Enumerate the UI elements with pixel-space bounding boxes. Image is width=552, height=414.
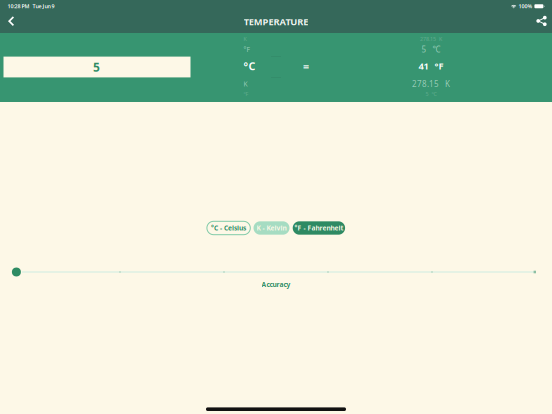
button[interactable]: Share: [532, 13, 548, 33]
staticText: 100%: [519, 3, 533, 10]
staticText: K - Kelvin: [256, 224, 286, 232]
staticText: °C: [243, 59, 255, 73]
staticText: K: [243, 80, 247, 88]
staticText: °F: [243, 90, 248, 98]
button[interactable]: K - Kelvin: [253, 221, 289, 235]
staticText: Accuracy: [261, 280, 290, 289]
staticText: =: [303, 59, 309, 73]
staticText: 278.15 K: [420, 35, 442, 43]
button[interactable]: Accuracy: [5, 261, 27, 283]
staticText: 41 °F: [418, 60, 443, 72]
button[interactable]: °F - Fahrenheit: [293, 221, 345, 235]
staticText: °F: [243, 45, 249, 54]
staticText: 278.15 K: [412, 79, 450, 89]
staticText: 5 °C: [425, 90, 436, 98]
button[interactable]: °C - Celsius: [207, 221, 250, 235]
button[interactable]: Back: [1, 13, 24, 33]
staticText: 10:28 PM Tue Jun 9: [7, 3, 54, 10]
staticText: 5 °C: [421, 44, 440, 55]
staticText: TEMPERATURE: [244, 15, 308, 28]
staticText: °C - Celsius: [211, 224, 246, 232]
staticText: °F - Fahrenheit: [294, 224, 343, 232]
staticText: K: [243, 35, 246, 43]
staticText: 5: [93, 59, 100, 75]
